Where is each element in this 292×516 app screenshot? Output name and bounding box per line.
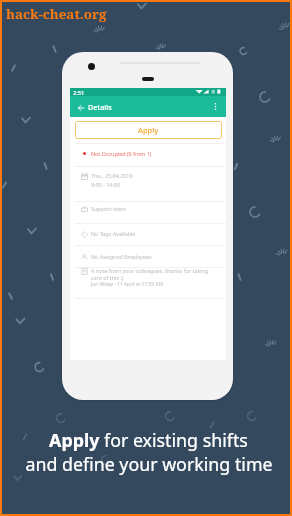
staticText: Jon Wisey - 11 April at 11:55 AM — [91, 281, 163, 288]
staticText: No Assigned Employees — [91, 253, 152, 260]
staticText: Support team — [91, 205, 126, 212]
button[interactable] — [70, 201, 226, 223]
staticText: A note from your colleagues, thanks for … — [91, 267, 209, 281]
button[interactable]: Back — [73, 100, 88, 115]
staticText: Thu., 25.04.2019 — [91, 172, 133, 179]
button[interactable]: More options — [209, 100, 222, 113]
staticText: Not Occupied (0 from 1) — [91, 150, 152, 157]
staticText: Details — [88, 102, 112, 112]
staticText: Apply — [138, 125, 159, 135]
button[interactable] — [70, 166, 226, 201]
staticText: 2:51 — [73, 89, 85, 97]
button[interactable] — [70, 223, 226, 246]
button[interactable] — [70, 143, 226, 166]
staticText: and define your working time — [25, 452, 273, 476]
staticText: Apply for existing shifts — [49, 428, 248, 452]
button[interactable] — [70, 245, 226, 267]
staticText: hack-cheat.org — [6, 5, 107, 23]
button[interactable]: Apply — [75, 121, 222, 139]
staticText: 9:00 - 14:00 — [91, 181, 121, 188]
staticText: No Tags Available — [91, 230, 136, 237]
button[interactable] — [70, 267, 226, 298]
